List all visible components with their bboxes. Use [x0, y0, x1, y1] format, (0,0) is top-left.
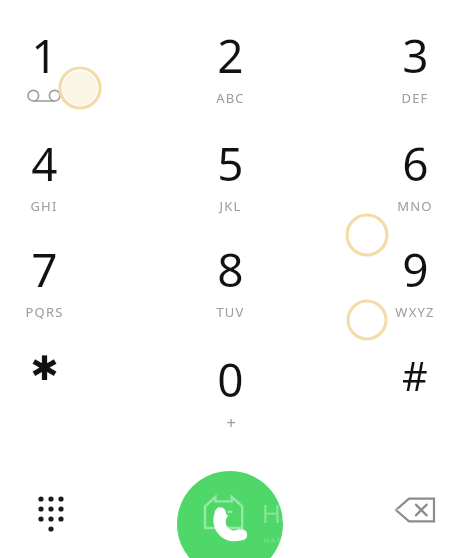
- button[interactable]: Show keypad: [29, 488, 73, 532]
- staticText: 0: [217, 348, 244, 411]
- staticText: MNO: [397, 197, 433, 215]
- button[interactable]: 9: [395, 238, 435, 321]
- staticText: 5: [217, 132, 244, 195]
- staticText: WXYZ: [395, 303, 435, 321]
- staticText: ✱: [30, 348, 59, 388]
- button[interactable]: 0: [217, 348, 244, 434]
- staticText: 9: [402, 238, 429, 301]
- staticText: TUV: [216, 303, 245, 321]
- staticText: ABC: [216, 89, 245, 107]
- button[interactable]: 7: [25, 238, 64, 321]
- button[interactable]: 1: [27, 24, 61, 102]
- button[interactable]: 2: [216, 24, 245, 107]
- staticText: 7: [31, 238, 58, 301]
- button[interactable]: Delete: [390, 492, 442, 528]
- button[interactable]: 3: [401, 24, 429, 107]
- staticText: PQRS: [25, 303, 64, 321]
- staticText: JKL: [219, 197, 242, 215]
- button[interactable]: Call: [177, 471, 283, 558]
- staticText: 6: [402, 132, 429, 195]
- staticText: 2: [217, 24, 244, 87]
- staticText: #: [402, 348, 428, 402]
- staticText: 3: [402, 24, 429, 87]
- staticText: +: [226, 411, 236, 434]
- staticText: H A N D S E T C A T . C O M: [264, 536, 351, 546]
- staticText: 1: [31, 24, 58, 87]
- staticText: GHI: [30, 197, 58, 215]
- staticText: HandsetCat: [262, 495, 401, 530]
- button[interactable]: 5: [217, 132, 244, 215]
- staticText: 8: [217, 238, 244, 301]
- staticText: DEF: [401, 89, 429, 107]
- button[interactable]: 4: [30, 132, 58, 215]
- button[interactable]: #: [402, 348, 428, 402]
- button[interactable]: 6: [397, 132, 433, 215]
- button[interactable]: 8: [216, 238, 245, 321]
- button[interactable]: ✱: [30, 348, 59, 388]
- staticText: 4: [31, 132, 58, 195]
